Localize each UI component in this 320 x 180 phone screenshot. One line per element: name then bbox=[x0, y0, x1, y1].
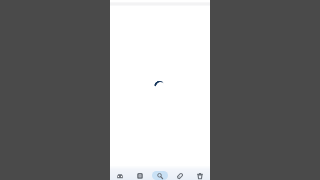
button[interactable]: Dashboard bbox=[130, 168, 150, 180]
button[interactable]: Search bbox=[150, 168, 170, 180]
button[interactable]: Vehicles bbox=[110, 168, 130, 180]
button[interactable]: Offers bbox=[170, 168, 190, 180]
button[interactable]: Recycle bin bbox=[190, 168, 210, 180]
